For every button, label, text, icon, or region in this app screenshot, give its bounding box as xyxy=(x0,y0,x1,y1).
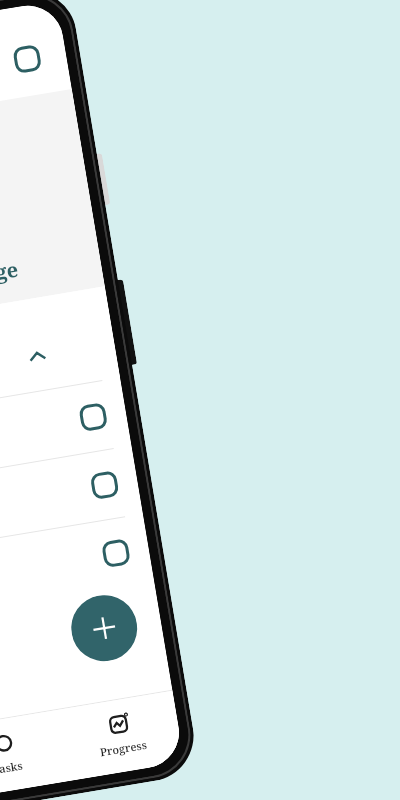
button[interactable]: Toggle complete xyxy=(90,470,120,500)
button[interactable]: Add task xyxy=(66,590,142,666)
button[interactable]: Morning routine xyxy=(0,378,131,503)
button[interactable]: Read a chapter xyxy=(0,446,143,571)
button[interactable]: Progress xyxy=(57,691,184,781)
staticText: Tasks xyxy=(0,758,24,777)
button[interactable]: Tasks xyxy=(0,710,69,800)
button[interactable]: Evening stretch xyxy=(0,514,154,639)
button[interactable]: Toggle complete xyxy=(101,538,131,568)
staticText: Manage xyxy=(0,255,21,295)
button[interactable]: Collapse xyxy=(14,333,60,379)
button[interactable]: Toggle complete xyxy=(12,44,42,74)
button[interactable]: Toggle complete xyxy=(78,402,108,432)
button[interactable]: Complete All xyxy=(0,28,60,136)
staticText: Progress xyxy=(98,737,148,759)
button[interactable]: Manage xyxy=(0,224,105,344)
